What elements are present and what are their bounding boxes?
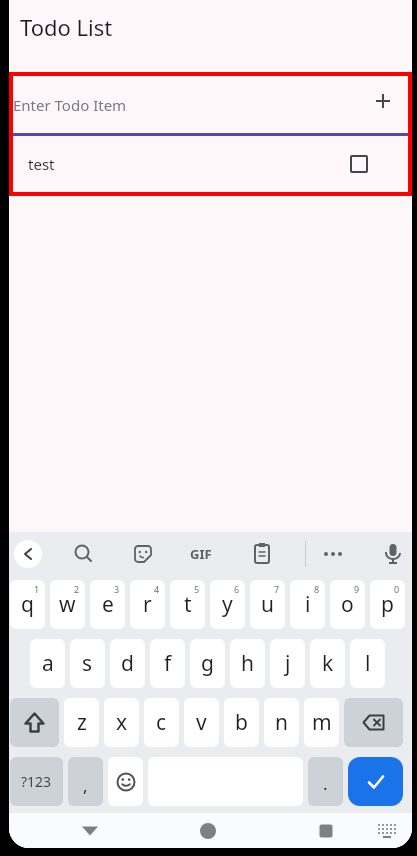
staticText: c	[156, 708, 167, 737]
button[interactable]: h	[230, 639, 265, 688]
button[interactable]	[315, 536, 351, 572]
button[interactable]: GIF	[183, 536, 219, 572]
staticText: j	[285, 649, 291, 678]
button[interactable]: r	[130, 580, 165, 629]
button[interactable]: y	[210, 580, 245, 629]
button[interactable]: o	[330, 580, 365, 629]
staticText: 3	[114, 583, 120, 595]
staticText: a	[42, 649, 54, 678]
button[interactable]: u	[250, 580, 285, 629]
staticText: q	[21, 590, 34, 619]
staticText: n	[275, 708, 288, 737]
button[interactable]: x	[104, 698, 139, 747]
staticText: f	[164, 649, 172, 678]
button[interactable]: n	[264, 698, 299, 747]
staticText: Todo List	[20, 12, 113, 42]
button[interactable]	[375, 819, 399, 843]
staticText: s	[82, 649, 93, 678]
button[interactable]	[348, 757, 403, 806]
button[interactable]	[196, 819, 220, 843]
button[interactable]: j	[270, 639, 305, 688]
staticText: h	[241, 649, 254, 678]
staticText: 0	[394, 583, 400, 595]
staticText: 6	[234, 583, 240, 595]
button[interactable]	[10, 698, 59, 747]
button[interactable]: l	[350, 639, 385, 688]
staticText: .	[323, 772, 328, 795]
staticText: 5	[194, 583, 200, 595]
button[interactable]	[108, 757, 143, 806]
staticText: k	[322, 649, 334, 678]
button[interactable]	[244, 536, 280, 572]
staticText: b	[235, 708, 248, 737]
staticText: u	[261, 590, 274, 619]
button[interactable]: t	[170, 580, 205, 629]
staticText: ,	[83, 774, 88, 797]
staticText: p	[381, 590, 394, 619]
staticText: o	[341, 590, 354, 619]
button[interactable]: c	[144, 698, 179, 747]
staticText: GIF	[190, 545, 212, 563]
staticText: v	[196, 708, 207, 737]
staticText: x	[116, 708, 128, 737]
button[interactable]: k	[310, 639, 345, 688]
staticText: 8	[314, 583, 320, 595]
button[interactable]: m	[304, 698, 339, 747]
button[interactable]: ?123	[10, 757, 63, 806]
staticText: 2	[74, 583, 80, 595]
button[interactable]	[350, 155, 368, 173]
button[interactable]: g	[190, 639, 225, 688]
button[interactable]: e	[90, 580, 125, 629]
button[interactable]	[314, 819, 338, 843]
staticText: w	[59, 590, 76, 619]
staticText: 4	[154, 583, 160, 595]
button[interactable]: .	[308, 757, 343, 806]
button[interactable]: test	[13, 136, 408, 192]
staticText: e	[102, 590, 114, 619]
button[interactable]: p	[370, 580, 405, 629]
button[interactable]: s	[70, 639, 105, 688]
staticText: i	[305, 590, 311, 619]
button[interactable]	[66, 536, 102, 572]
staticText: ?123	[21, 772, 52, 791]
staticText: t	[184, 590, 192, 619]
button[interactable]: b	[224, 698, 259, 747]
button[interactable]: q	[10, 580, 45, 629]
staticText: l	[365, 649, 371, 678]
button[interactable]: ,	[68, 757, 103, 806]
staticText: d	[121, 649, 134, 678]
button[interactable]: d	[110, 639, 145, 688]
button[interactable]	[125, 536, 161, 572]
button[interactable]: a	[30, 639, 65, 688]
button[interactable]	[14, 540, 42, 568]
staticText: z	[77, 708, 87, 737]
button[interactable]	[78, 819, 102, 843]
button[interactable]: z	[64, 698, 99, 747]
staticText: y	[222, 590, 233, 619]
button[interactable]	[367, 85, 399, 117]
staticText: 9	[354, 583, 360, 595]
button[interactable]	[344, 698, 403, 747]
staticText: g	[201, 649, 214, 678]
button[interactable]: i	[290, 580, 325, 629]
staticText: test	[28, 154, 55, 174]
button[interactable]: v	[184, 698, 219, 747]
button[interactable]: Enter Todo Item	[13, 76, 408, 133]
button[interactable]: w	[50, 580, 85, 629]
staticText: r	[143, 590, 152, 619]
staticText: m	[312, 708, 332, 737]
staticText: 1	[34, 583, 40, 595]
staticText: 7	[274, 583, 280, 595]
staticText: Enter Todo Item	[13, 95, 127, 115]
button[interactable]: f	[150, 639, 185, 688]
button[interactable]	[375, 536, 411, 572]
